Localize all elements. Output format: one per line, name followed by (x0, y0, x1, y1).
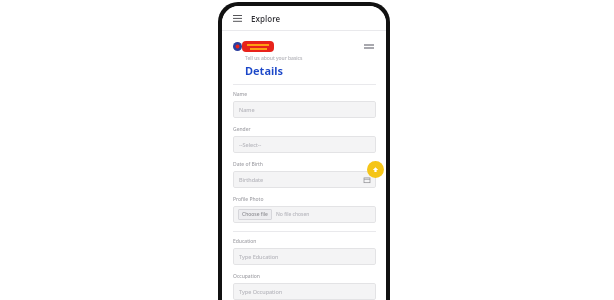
button[interactable]: Menu (362, 42, 376, 51)
button[interactable]: Type Education (233, 248, 376, 265)
button[interactable]: App logo (233, 41, 274, 52)
staticText: Date of Birth (233, 161, 263, 168)
button[interactable]: Choose file (238, 209, 272, 220)
staticText: Name (233, 91, 248, 98)
staticText: Education (233, 238, 257, 245)
staticText: No file chosen (276, 211, 310, 218)
button[interactable]: Birthdate (233, 171, 376, 188)
staticText: Tell us about your basics (245, 55, 303, 62)
button[interactable]: Type Occupation (233, 283, 376, 300)
staticText: Name (239, 106, 370, 113)
staticText: Choose file (242, 211, 268, 218)
staticText: Details (245, 63, 284, 78)
staticText: Occupation (233, 273, 260, 280)
staticText: Gender (233, 126, 251, 133)
staticText: Type Education (239, 253, 370, 260)
staticText: Type Occupation (239, 288, 370, 295)
staticText: --Select-- (239, 141, 370, 148)
staticText: Profile Photo (233, 196, 264, 203)
button[interactable]: Open navigation menu (230, 11, 244, 25)
button[interactable]: --Select-- (233, 136, 376, 153)
button[interactable]: Name (233, 101, 376, 118)
button[interactable]: Scroll to top (367, 161, 384, 178)
staticText: Birthdate (239, 176, 364, 183)
staticText: Explore (251, 13, 281, 24)
